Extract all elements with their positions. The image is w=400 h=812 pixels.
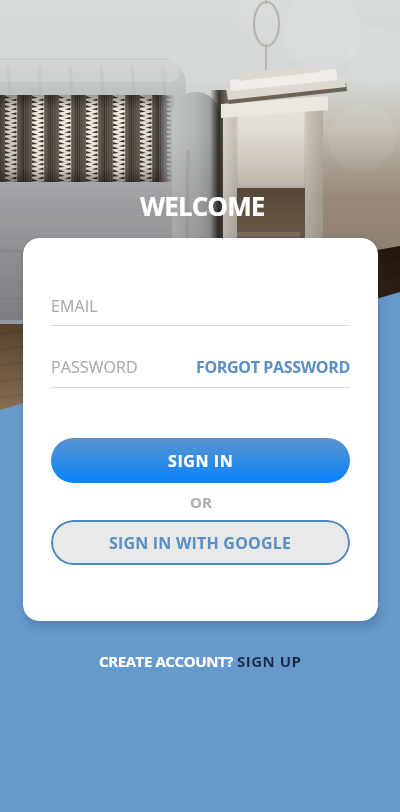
staticText: SIGN IN WITH GOOGLE: [109, 532, 292, 554]
staticText: EMAIL: [51, 295, 98, 317]
staticText: OR: [190, 492, 212, 512]
button[interactable]: FORGOT PASSWORD: [196, 356, 350, 378]
staticText: SIGN UP: [237, 651, 302, 671]
staticText: WELCOME: [140, 188, 265, 223]
button[interactable]: SIGN IN WITH GOOGLE: [51, 520, 350, 565]
staticText: CREATE ACCOUNT?: [99, 651, 237, 671]
button[interactable]: PASSWORD: [51, 356, 138, 378]
staticText: SIGN IN: [168, 450, 234, 472]
button[interactable]: CREATE ACCOUNT?: [89, 648, 312, 674]
button[interactable]: SIGN IN: [51, 438, 350, 483]
button[interactable]: EMAIL: [23, 295, 378, 326]
